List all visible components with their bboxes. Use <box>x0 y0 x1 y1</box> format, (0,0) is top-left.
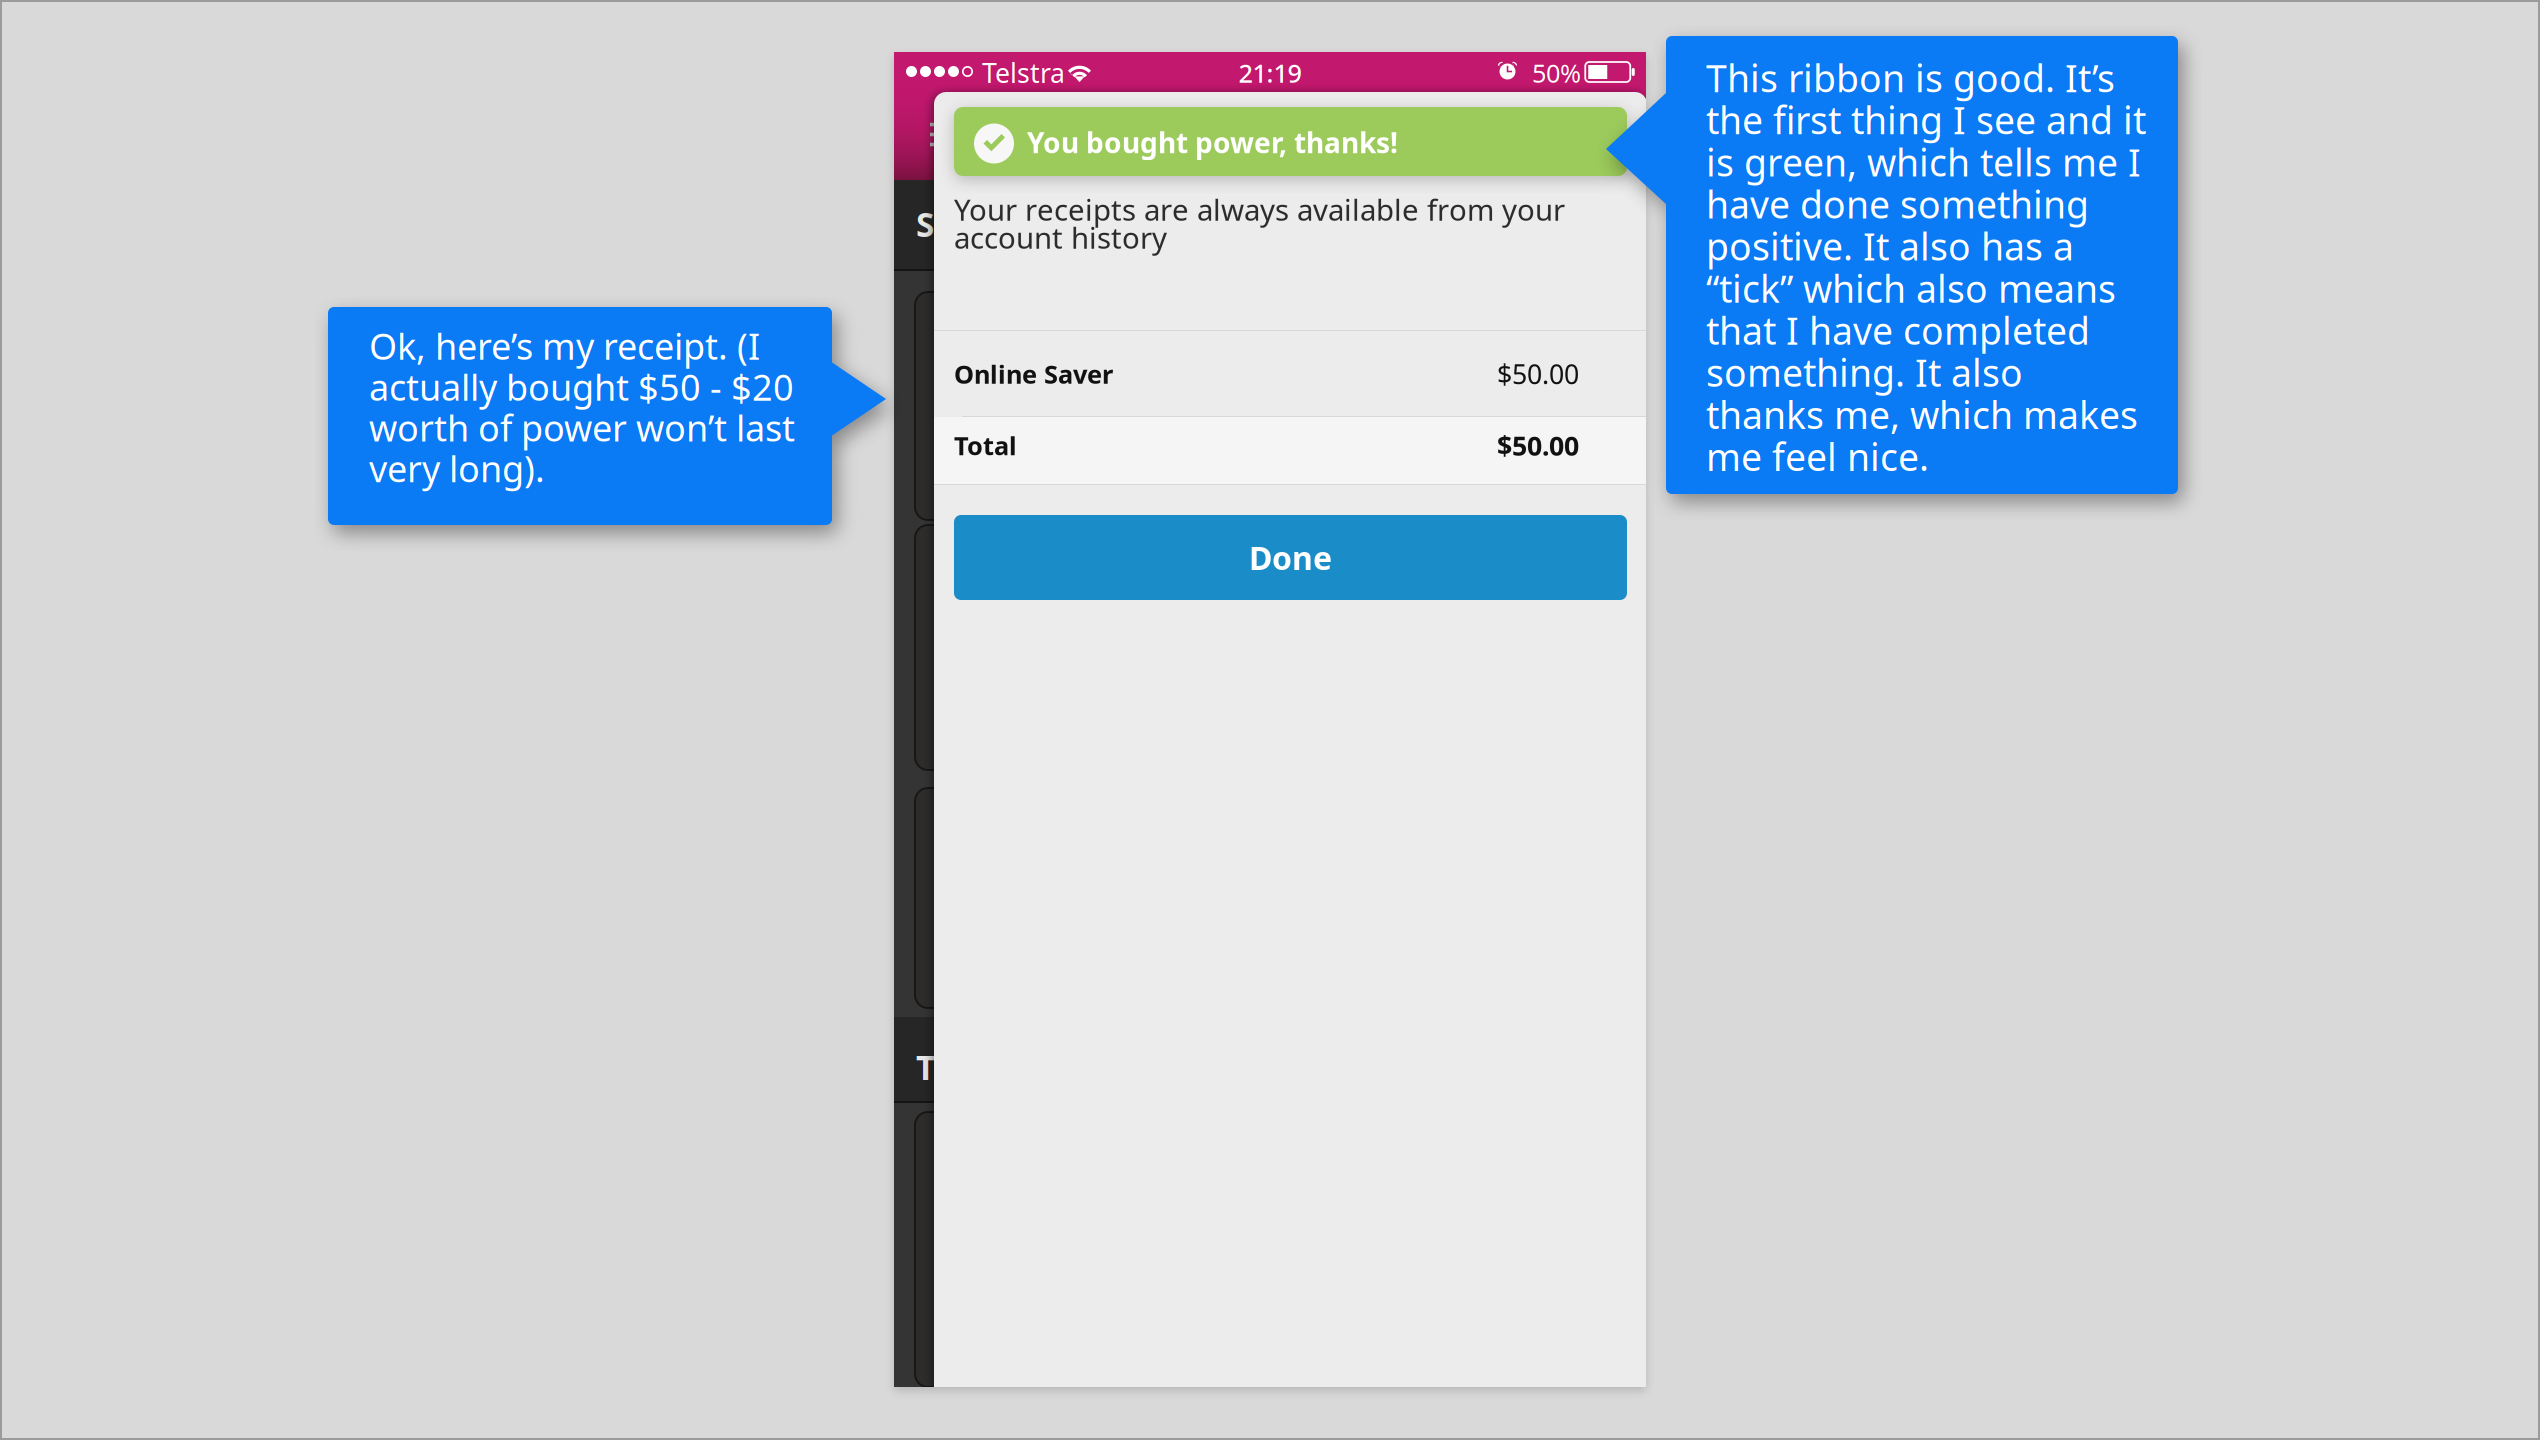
staticText: To <box>916 1045 954 1089</box>
staticText: Sp <box>916 202 955 246</box>
staticText: 21:19 <box>1238 56 1301 90</box>
staticText: Your receipts are always available from … <box>954 190 1565 257</box>
staticText: Ok, here’s my receipt. (I actually bough… <box>369 322 795 492</box>
staticText: You bought power, thanks! <box>1027 124 1398 161</box>
button[interactable]: Menu <box>930 123 960 146</box>
staticText: $50.00 <box>1497 356 1579 392</box>
staticText: Telstra <box>982 55 1065 90</box>
staticText: This ribbon is good. It’s the first thin… <box>1706 53 2146 481</box>
staticText: 50% <box>1532 56 1581 90</box>
staticText: Total <box>954 429 1017 462</box>
staticText: Online Saver <box>954 357 1113 391</box>
staticText: Done <box>1249 536 1332 579</box>
button[interactable]: Done <box>954 515 1627 600</box>
staticText: $50.00 <box>1497 428 1579 463</box>
